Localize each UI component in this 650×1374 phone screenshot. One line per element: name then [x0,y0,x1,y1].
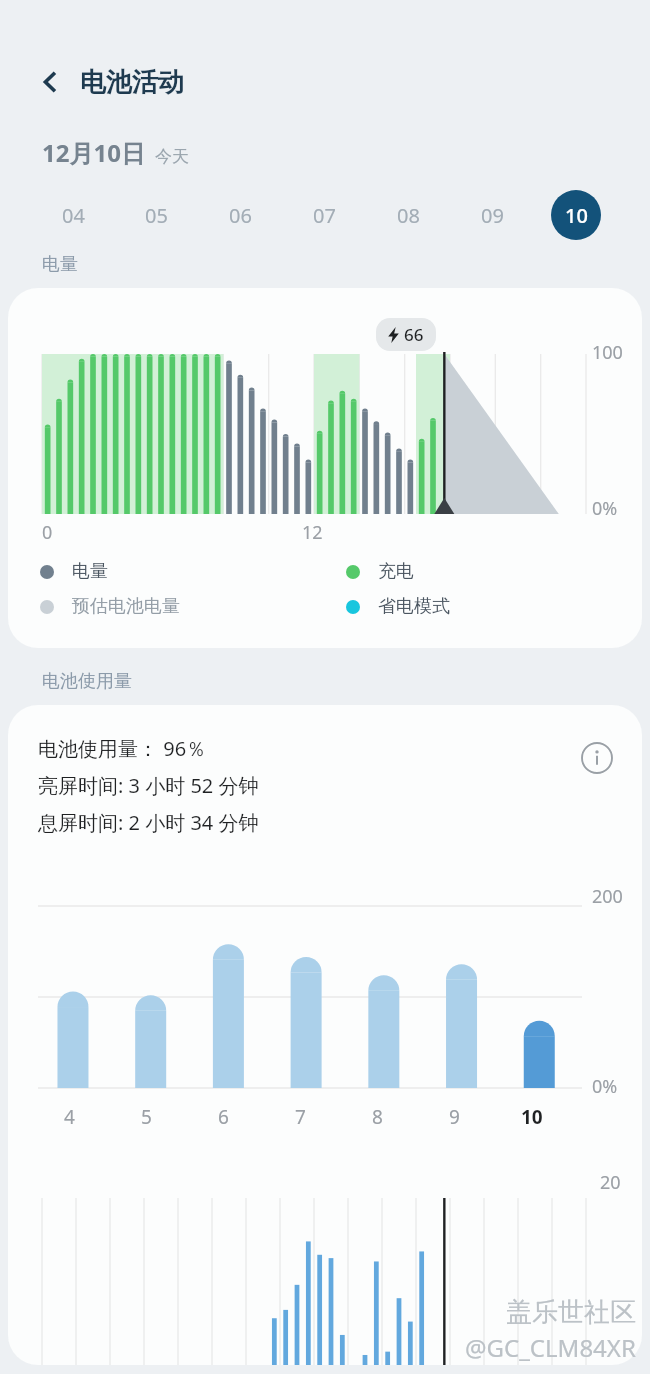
button[interactable]: 06 [198,189,282,241]
staticText: 8 [372,1104,383,1130]
button[interactable]: 05 [115,189,198,241]
button[interactable]: 09 [450,189,534,241]
staticText: 盖乐世社区 [506,1296,636,1329]
staticText: 省电模式 [378,595,450,618]
staticText: 0% [592,1074,618,1099]
staticText: 08 [397,202,420,229]
button[interactable]: Information [574,735,620,781]
staticText: 200 [592,884,623,909]
staticText: 100 [592,340,623,365]
staticText: 10 [521,1104,543,1130]
staticText: 息屏时间: 2 小时 34 分钟 [38,809,259,836]
staticText: 7 [295,1104,306,1130]
staticText: 电池使用量 [42,670,132,693]
staticText: 66 [404,323,424,346]
button[interactable]: 100 [8,288,642,648]
staticText: 20 [600,1170,621,1195]
staticText: 12 [302,520,323,545]
staticText: 10 [565,202,588,229]
staticText: 5 [141,1104,152,1130]
button[interactable]: 08 [366,189,450,241]
staticText: 6 [218,1104,229,1130]
staticText: 今天 [155,146,189,167]
staticText: 12月10日 [42,136,145,169]
staticText: 05 [145,202,168,229]
staticText: 9 [449,1104,460,1130]
staticText: 电量 [42,253,78,276]
staticText: 充电 [378,560,414,583]
staticText: 0 [42,520,53,545]
staticText: @GC_CLM84XR [465,1331,636,1364]
button[interactable]: 07 [282,189,366,241]
staticText: 4 [64,1104,75,1130]
staticText: 07 [313,202,336,229]
button[interactable]: 电池使用量： 96％ [8,705,642,1365]
staticText: 0% [592,496,618,521]
button[interactable]: Back [28,59,74,105]
staticText: 预估电池电量 [72,595,180,618]
staticText: 电池使用量： 96％ [38,735,207,762]
staticText: 09 [481,202,504,229]
button[interactable]: 10 [534,189,618,241]
staticText: 04 [62,202,85,229]
button[interactable]: 04 [32,189,115,241]
staticText: 电池活动 [80,66,184,99]
staticText: 亮屏时间: 3 小时 52 分钟 [38,772,259,799]
staticText: 06 [229,202,252,229]
staticText: 电量 [72,560,108,583]
